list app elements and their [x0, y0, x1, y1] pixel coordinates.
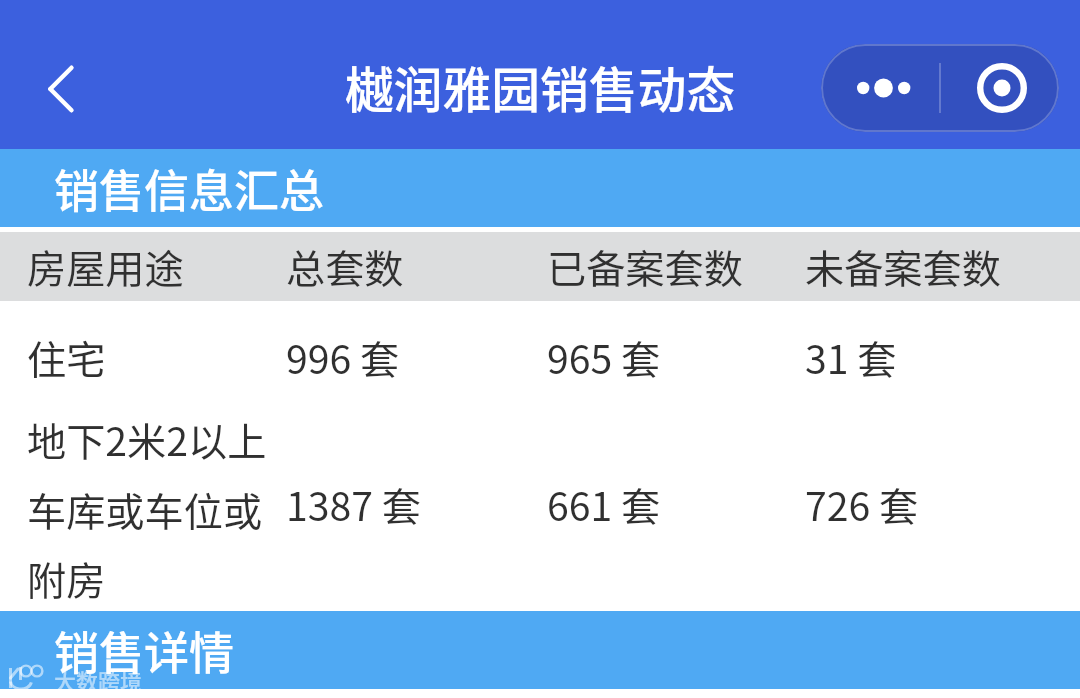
staticText: 销售详情 — [54, 618, 235, 683]
button[interactable]: Close mini program — [940, 44, 1059, 132]
button[interactable]: 地下2米2以上 — [0, 392, 1080, 610]
staticText: 1387 套 — [286, 476, 421, 533]
staticText: 未备案套数 — [805, 238, 1001, 295]
button[interactable]: More options — [821, 44, 940, 132]
staticText: 31 套 — [805, 329, 897, 386]
staticText: 附房 — [27, 550, 106, 607]
staticText: 车库或车位或 — [27, 481, 263, 538]
staticText: 住宅 — [27, 329, 106, 386]
staticText: 总套数 — [286, 238, 404, 295]
button[interactable]: 住宅 — [0, 322, 1080, 392]
staticText: 726 套 — [805, 476, 919, 533]
staticText: 地下2米2以上 — [27, 411, 267, 468]
staticText: 樾润雅园销售动态 — [0, 51, 1080, 122]
staticText: 661 套 — [547, 476, 661, 533]
staticText: 房屋用途 — [27, 238, 184, 295]
staticText: 已备案套数 — [547, 238, 743, 295]
staticText: 大数跨境 — [54, 664, 143, 696]
staticText: 996 套 — [286, 329, 400, 386]
button[interactable]: Back — [20, 54, 90, 124]
staticText: 销售信息汇总 — [54, 156, 325, 221]
staticText: 965 套 — [547, 329, 661, 386]
